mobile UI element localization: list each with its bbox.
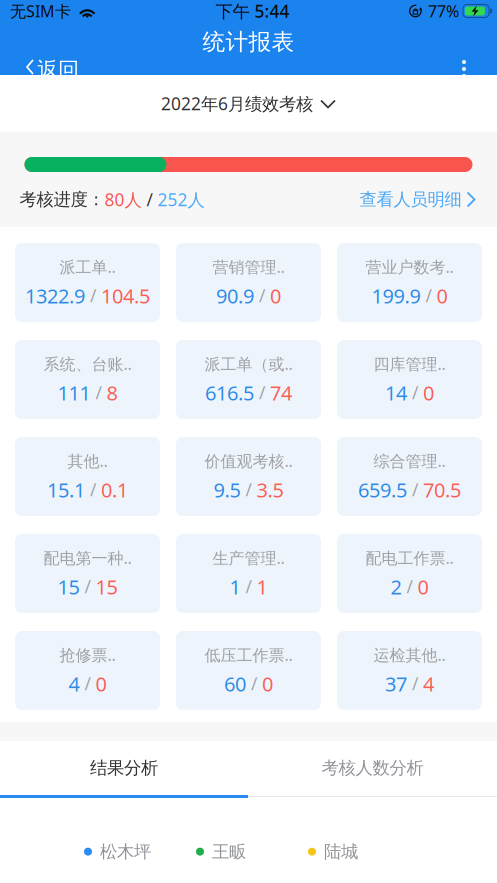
button[interactable]: 返回 [25, 57, 79, 79]
button[interactable]: 结果分析 [0, 741, 248, 795]
staticText: 252人 [157, 188, 204, 211]
staticText: 0 [270, 282, 281, 309]
staticText: / [84, 672, 90, 695]
staticText: 0 [262, 670, 273, 697]
staticText: 659.5 [358, 476, 407, 503]
button[interactable]: 价值观考核.. [176, 437, 321, 516]
staticText: 37 [385, 670, 407, 697]
staticText: / [412, 672, 418, 695]
staticText: 15 [95, 573, 117, 600]
staticText: 无SIM卡 [10, 0, 71, 22]
staticText: / [259, 284, 265, 307]
staticText: 松木坪 [100, 841, 151, 862]
button[interactable]: 更多 [456, 57, 472, 78]
staticText: 配电工作票.. [365, 547, 453, 568]
staticText: 生产管理.. [212, 547, 284, 568]
button[interactable]: 其他.. [15, 437, 160, 516]
staticText: / [412, 381, 418, 404]
button[interactable]: 营销管理.. [176, 243, 321, 322]
button[interactable]: 派工单.. [15, 243, 160, 322]
staticText: 1 [256, 573, 267, 600]
staticText: 结果分析 [90, 757, 158, 779]
staticText: 4 [423, 670, 434, 697]
staticText: 0 [95, 670, 106, 697]
staticText: 考核进度： [19, 189, 104, 210]
staticText: 四库管理.. [373, 353, 445, 374]
staticText: / [245, 575, 251, 598]
staticText: / [245, 478, 251, 501]
staticText: 90.9 [216, 282, 254, 309]
button[interactable]: 四库管理.. [337, 340, 482, 419]
staticText: 营业户数考.. [365, 256, 453, 277]
staticText: / [90, 284, 96, 307]
staticText: / [84, 575, 90, 598]
staticText: 派工单（或.. [204, 353, 292, 374]
button[interactable]: 低压工作票.. [176, 631, 321, 710]
staticText: 0.1 [101, 476, 128, 503]
staticText: 下午 5:44 [215, 0, 289, 22]
staticText: 15.1 [47, 476, 85, 503]
button[interactable]: 配电第一种.. [15, 534, 160, 613]
staticText: 营销管理.. [212, 256, 284, 277]
staticText: 70.5 [423, 476, 461, 503]
staticText: 0 [417, 573, 428, 600]
staticText: 616.5 [205, 379, 254, 406]
staticText: 王畈 [212, 841, 246, 862]
staticText: 2 [390, 573, 401, 600]
staticText: 1 [229, 573, 240, 600]
staticText: 1322.9 [25, 282, 85, 309]
staticText: 低压工作票.. [204, 644, 292, 665]
staticText: 运检其他.. [373, 644, 445, 665]
staticText: 返回 [37, 57, 79, 83]
staticText: / [251, 672, 257, 695]
staticText: 60 [224, 670, 246, 697]
staticText: 配电第一种.. [43, 547, 131, 568]
staticText: 系统、台账.. [43, 353, 131, 374]
staticText: / [90, 478, 96, 501]
button[interactable]: 运检其他.. [337, 631, 482, 710]
staticText: 77% [428, 0, 459, 22]
staticText: 抢修票.. [59, 644, 115, 665]
staticText: / [141, 188, 157, 211]
button[interactable]: 派工单（或.. [176, 340, 321, 419]
button[interactable]: 系统、台账.. [15, 340, 160, 419]
button[interactable]: 营业户数考.. [337, 243, 482, 322]
staticText: 0 [436, 282, 447, 309]
staticText: / [425, 284, 431, 307]
staticText: 111 [57, 379, 90, 406]
staticText: 9.5 [213, 476, 240, 503]
button[interactable]: 综合管理.. [337, 437, 482, 516]
staticText: 派工单.. [59, 256, 115, 277]
staticText: 80人 [104, 188, 141, 211]
staticText: / [259, 381, 265, 404]
staticText: / [95, 381, 101, 404]
staticText: / [406, 575, 412, 598]
staticText: 其他.. [67, 450, 107, 471]
staticText: 199.9 [371, 282, 420, 309]
staticText: 陆城 [324, 841, 358, 862]
button[interactable]: 抢修票.. [15, 631, 160, 710]
staticText: 15 [57, 573, 79, 600]
staticText: 14 [385, 379, 407, 406]
staticText: 价值观考核.. [204, 450, 292, 471]
staticText: 统计报表 [202, 28, 294, 56]
staticText: 104.5 [101, 282, 150, 309]
staticText: 综合管理.. [373, 450, 445, 471]
button[interactable]: 查看人员明细 [359, 189, 477, 210]
staticText: / [412, 478, 418, 501]
staticText: 8 [106, 379, 117, 406]
staticText: 查看人员明细 [359, 189, 461, 210]
button[interactable]: 生产管理.. [176, 534, 321, 613]
staticText: 2022年6月绩效考核 [161, 92, 313, 115]
staticText: 4 [68, 670, 79, 697]
staticText: 0 [423, 379, 434, 406]
button[interactable]: 2022年6月绩效考核 [0, 75, 497, 132]
staticText: 3.5 [256, 476, 283, 503]
staticText: 74 [270, 379, 292, 406]
button[interactable]: 配电工作票.. [337, 534, 482, 613]
staticText: 考核人数分析 [321, 757, 423, 779]
button[interactable]: 考核人数分析 [248, 741, 497, 795]
